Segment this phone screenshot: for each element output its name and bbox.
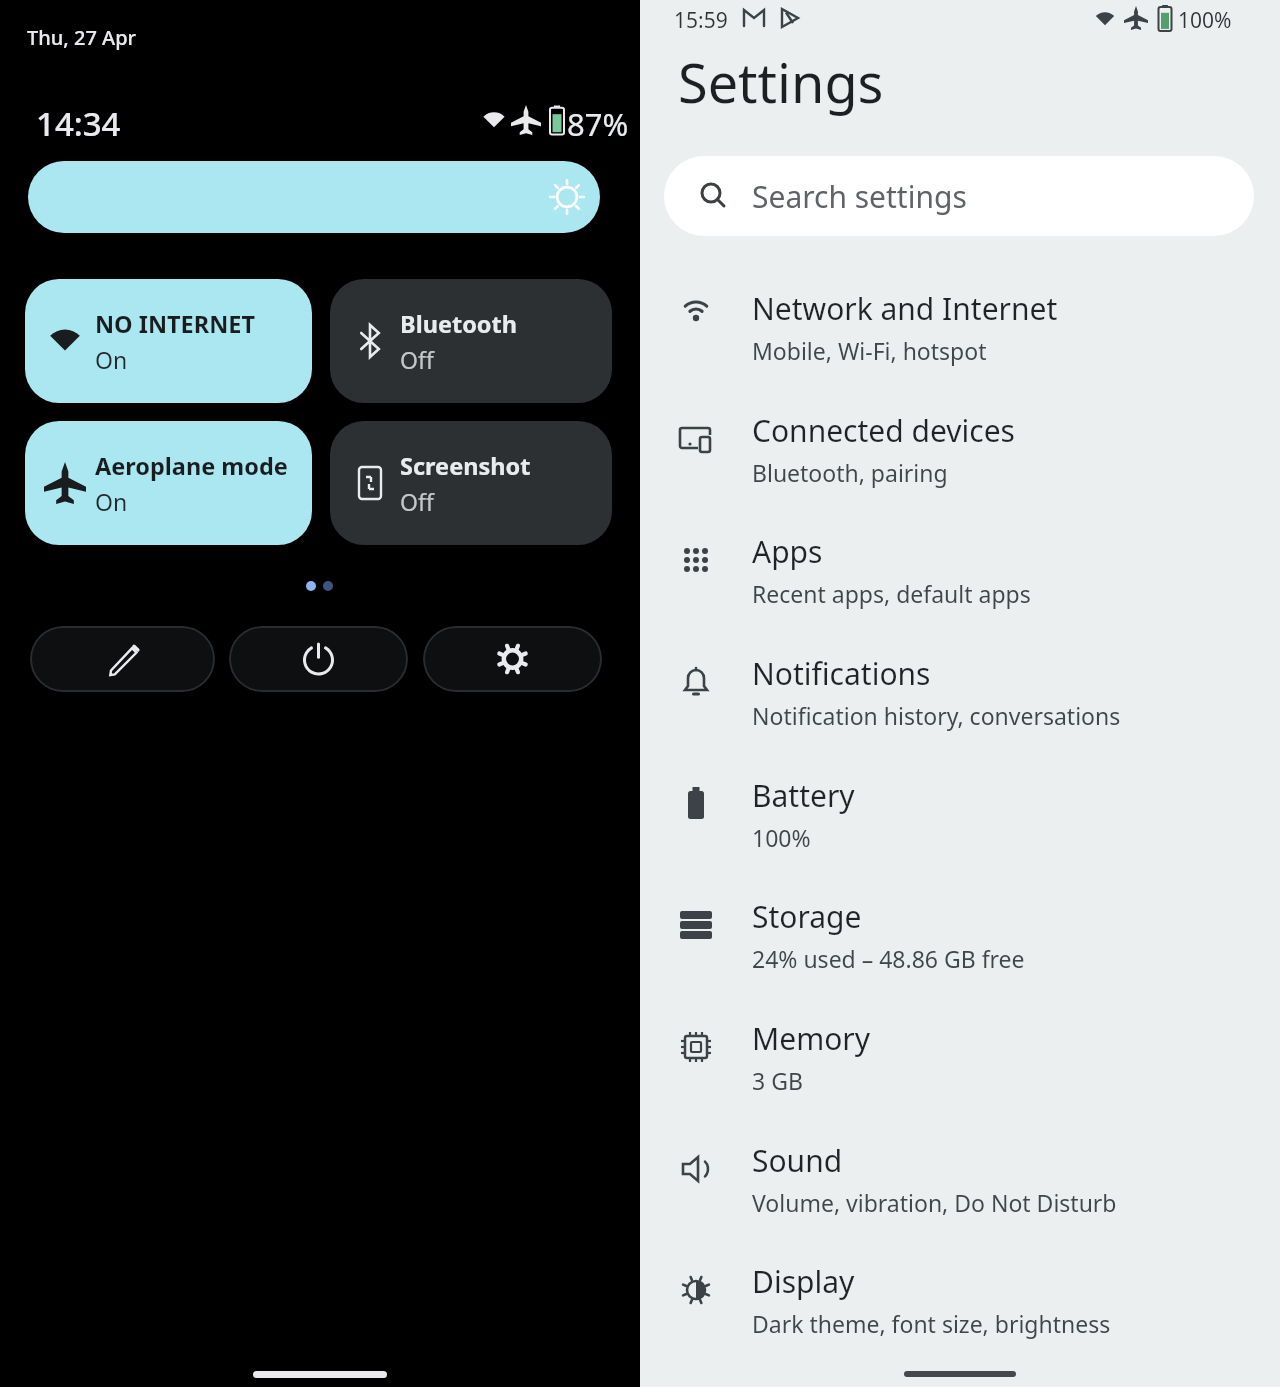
staticText: Connected devices	[752, 410, 1015, 451]
staticText: On	[95, 344, 128, 375]
staticText: 100%	[752, 822, 811, 853]
staticText: Search settings	[752, 176, 967, 217]
staticText: 24% used – 48.86 GB free	[752, 943, 1025, 974]
staticText: On	[95, 486, 128, 517]
button[interactable]: Memory	[664, 996, 1280, 1118]
staticText: Notification history, conversations	[752, 700, 1121, 731]
button[interactable]: Storage	[664, 874, 1280, 996]
button[interactable]: Battery	[664, 753, 1280, 875]
button[interactable]: Screenshot	[330, 421, 612, 545]
staticText: Screenshot	[400, 450, 531, 482]
staticText: Settings	[678, 45, 884, 119]
button[interactable]: Bluetooth	[330, 279, 612, 403]
staticText: Notifications	[752, 653, 931, 694]
button[interactable]: Search settings	[664, 156, 1254, 236]
staticText: Mobile, Wi-Fi, hotspot	[752, 335, 987, 366]
staticText: Volume, vibration, Do Not Disturb	[752, 1187, 1117, 1218]
button[interactable]	[30, 626, 215, 692]
staticText: Aeroplane mode	[95, 450, 288, 482]
button[interactable]	[423, 626, 602, 692]
staticText: 100%	[1178, 6, 1232, 35]
staticText: Storage	[752, 896, 862, 937]
staticText: Bluetooth, pairing	[752, 457, 948, 488]
staticText: Off	[400, 344, 434, 375]
staticText: Display	[752, 1261, 855, 1302]
staticText: Dark theme, font size, brightness	[752, 1308, 1111, 1339]
staticText: Bluetooth	[400, 308, 517, 340]
button[interactable]: Network and Internet	[664, 266, 1280, 388]
staticText: Network and Internet	[752, 288, 1058, 329]
staticText: Memory	[752, 1018, 871, 1059]
staticText: Thu, 27 Apr	[27, 24, 137, 51]
staticText: Apps	[752, 531, 823, 572]
staticText: 87%	[567, 103, 629, 145]
staticText: 14:34	[36, 101, 121, 146]
button[interactable]: Notifications	[664, 631, 1280, 753]
staticText: Sound	[752, 1140, 843, 1181]
button[interactable]: NO INTERNET	[25, 279, 312, 403]
staticText: 3 GB	[752, 1065, 803, 1096]
button[interactable]: Apps	[664, 509, 1280, 631]
staticText: Recent apps, default apps	[752, 578, 1031, 609]
button[interactable]: Connected devices	[664, 388, 1280, 510]
button[interactable]	[28, 161, 600, 233]
staticText: Battery	[752, 775, 855, 816]
staticText: 15:59	[674, 6, 728, 35]
button[interactable]	[229, 626, 408, 692]
staticText: NO INTERNET	[95, 308, 256, 340]
button[interactable]: Display	[664, 1239, 1280, 1361]
staticText: Off	[400, 486, 434, 517]
button[interactable]: Sound	[664, 1118, 1280, 1240]
button[interactable]: Aeroplane mode	[25, 421, 312, 545]
